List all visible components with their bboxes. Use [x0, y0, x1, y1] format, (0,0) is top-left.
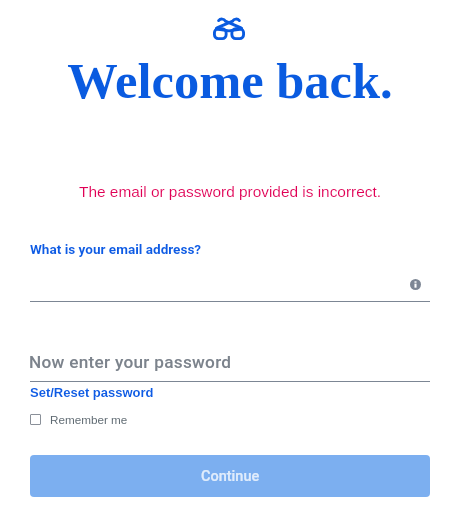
staticText: Now enter your password	[29, 352, 232, 372]
button[interactable]: What is your email address?	[30, 241, 202, 257]
button[interactable]: Set/Reset password	[30, 385, 154, 400]
staticText: The email or password provided is incorr…	[0, 183, 460, 200]
other: Brand logo	[213, 17, 245, 40]
button[interactable]: Remember me	[30, 413, 128, 426]
button[interactable]: More information	[410, 279, 421, 290]
staticText: Welcome back.	[0, 53, 460, 109]
staticText: Remember me	[50, 413, 128, 426]
staticText: Continue	[201, 468, 260, 485]
button[interactable]: Continue	[30, 455, 430, 497]
